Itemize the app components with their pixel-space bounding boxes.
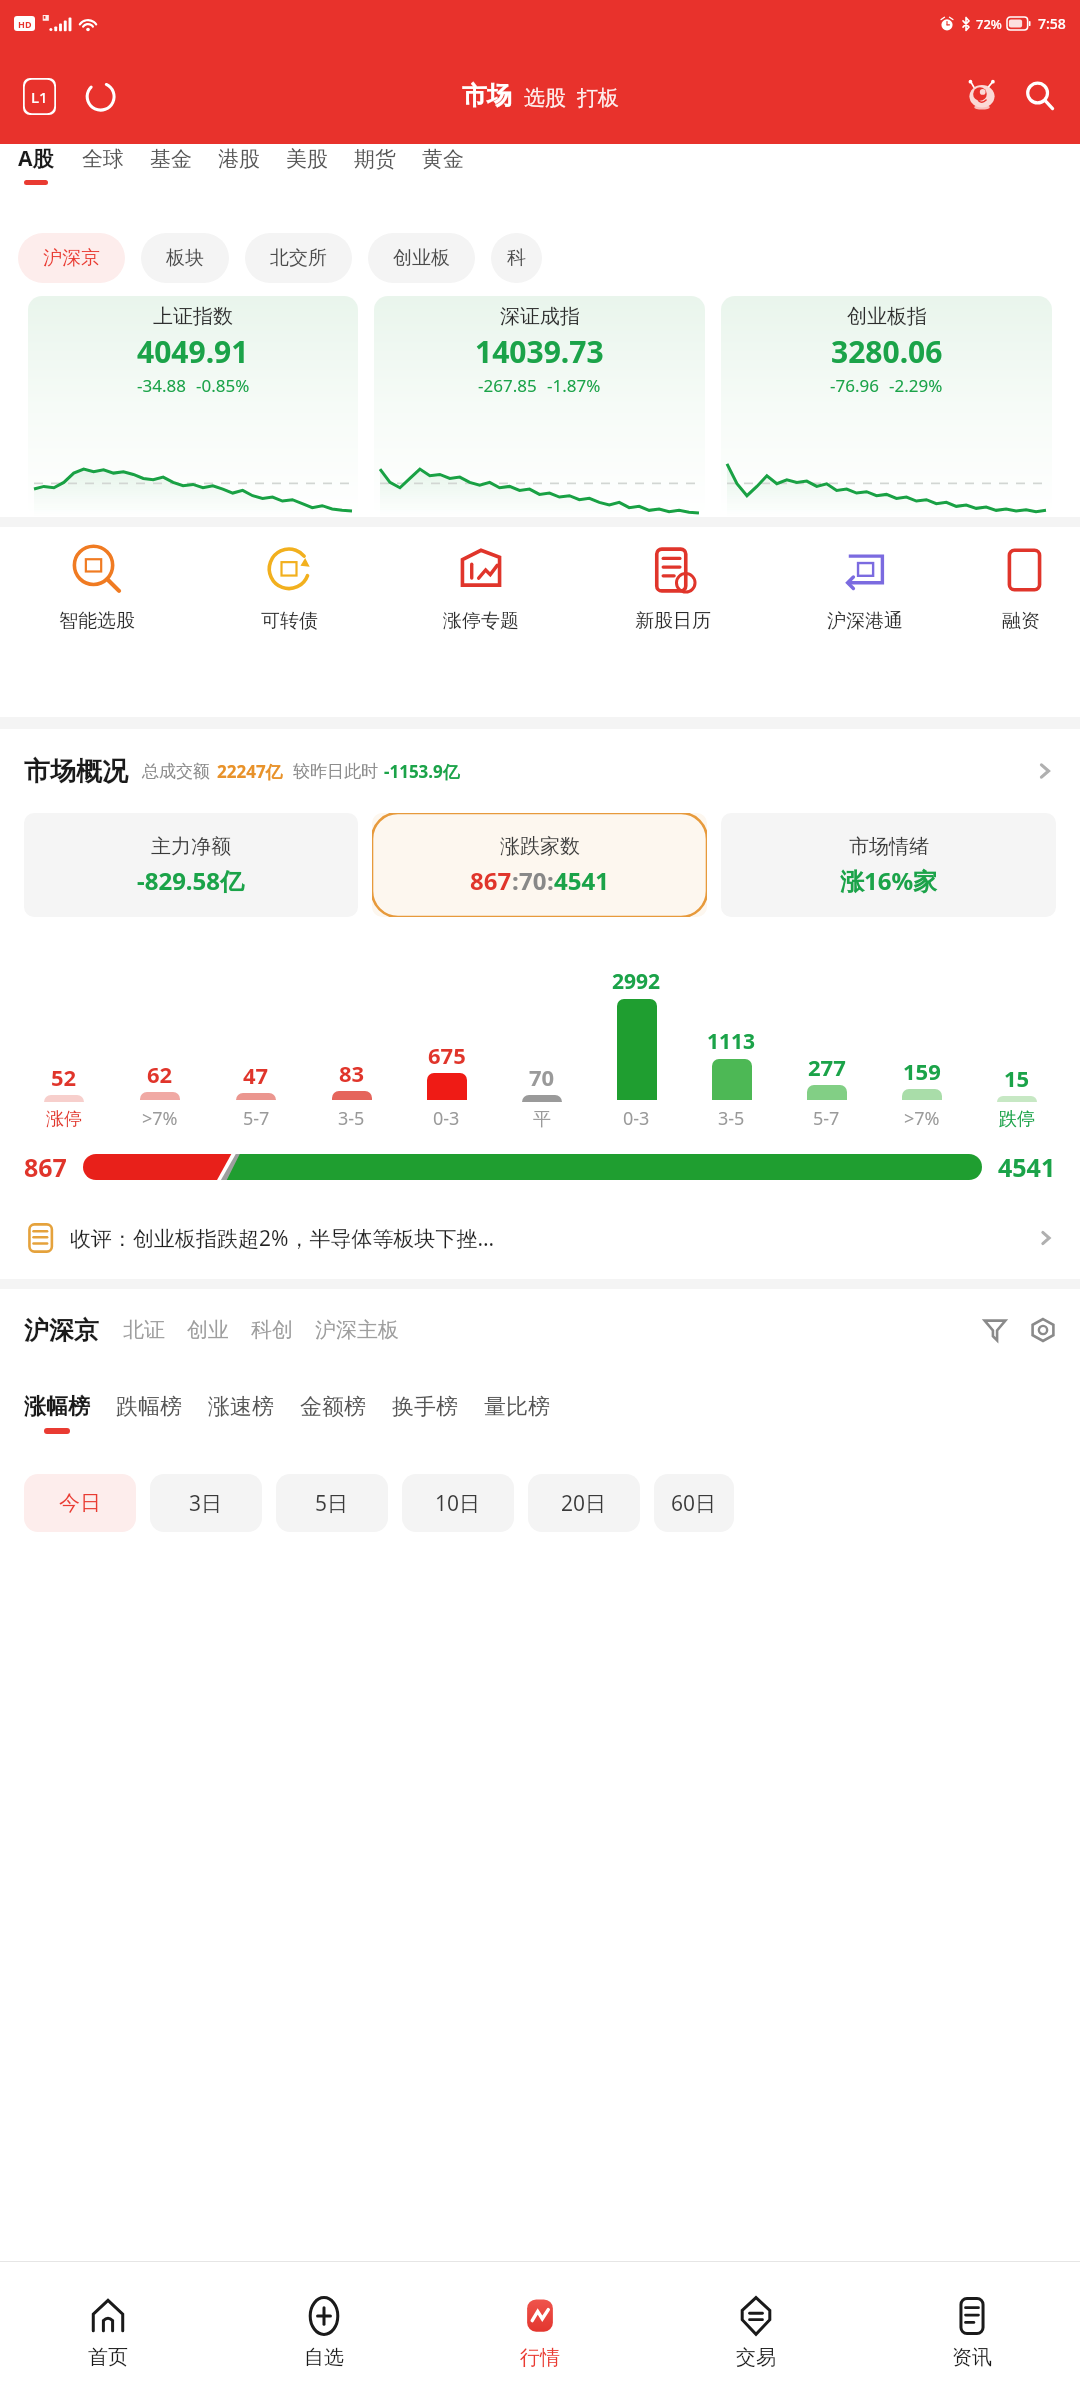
- button[interactable]: 新股日历: [577, 541, 769, 633]
- staticText: 0-3: [623, 1106, 650, 1131]
- staticText: 涨停专题: [443, 609, 519, 633]
- button[interactable]: 自选: [216, 2262, 432, 2400]
- button[interactable]: 市场概况: [24, 729, 1056, 813]
- button[interactable]: 创业板: [368, 233, 475, 283]
- staticText: 打板: [577, 85, 619, 111]
- button[interactable]: 可转债: [193, 541, 385, 633]
- staticText: :: [547, 864, 554, 897]
- button[interactable]: 涨速榜: [208, 1393, 274, 1434]
- button[interactable]: 首页: [0, 2262, 216, 2400]
- staticText: 22247亿: [217, 760, 283, 783]
- button[interactable]: 创业: [187, 1317, 229, 1343]
- staticText: 量比榜: [484, 1393, 550, 1421]
- button[interactable]: 交易: [648, 2262, 864, 2400]
- staticText: 总成交额: [142, 761, 210, 782]
- button[interactable]: 上证指数: [28, 296, 358, 517]
- button[interactable]: 全球: [82, 146, 124, 184]
- staticText: 867: [470, 864, 512, 897]
- staticText: 675: [428, 1040, 466, 1070]
- button[interactable]: 市场情绪: [721, 813, 1056, 917]
- staticText: 北交所: [270, 246, 327, 270]
- button[interactable]: 今日: [24, 1474, 136, 1532]
- button[interactable]: 沪深主板: [315, 1317, 399, 1343]
- button[interactable]: 涨幅榜: [24, 1393, 90, 1434]
- button[interactable]: 科: [491, 233, 542, 283]
- button[interactable]: 板块: [141, 233, 229, 283]
- staticText: >7%: [904, 1106, 940, 1131]
- button[interactable]: Assistant: [960, 74, 1004, 118]
- staticText: 科: [507, 246, 526, 270]
- staticText: 159: [903, 1056, 941, 1086]
- staticText: 交易: [736, 2345, 776, 2370]
- button[interactable]: 5日: [276, 1474, 388, 1532]
- button[interactable]: 3日: [150, 1474, 262, 1532]
- button[interactable]: 主力净额: [24, 813, 358, 917]
- staticText: 20日: [561, 1489, 607, 1518]
- button[interactable]: 沪深京: [18, 233, 125, 283]
- button[interactable]: 科创: [251, 1317, 293, 1343]
- button[interactable]: Settings: [1024, 1311, 1062, 1349]
- button[interactable]: A股: [18, 144, 54, 185]
- staticText: L1: [31, 87, 48, 107]
- button[interactable]: 收评：创业板指跌超2%，半导体等板块下挫…: [24, 1211, 1056, 1265]
- staticText: 867: [24, 1150, 67, 1184]
- staticText: 3-5: [718, 1106, 745, 1131]
- staticText: 板块: [166, 246, 204, 270]
- staticText: 跌停: [999, 1108, 1035, 1131]
- button[interactable]: Night mode: [80, 76, 120, 116]
- staticText: 沪深京: [43, 246, 100, 270]
- staticText: 70: [529, 1062, 555, 1092]
- staticText: -34.88: [137, 374, 186, 397]
- staticText: 上证指数: [153, 304, 233, 329]
- staticText: -829.58亿: [137, 864, 245, 897]
- staticText: 83: [339, 1058, 365, 1088]
- button[interactable]: 20日: [528, 1474, 640, 1532]
- button[interactable]: 金额榜: [300, 1393, 366, 1434]
- button[interactable]: 期货: [354, 146, 396, 184]
- staticText: 市场: [462, 80, 512, 111]
- staticText: 1113: [707, 1027, 756, 1056]
- staticText: 52: [51, 1062, 77, 1092]
- staticText: 深证成指: [500, 304, 580, 329]
- button[interactable]: 基金: [150, 146, 192, 184]
- staticText: 涨跌家数: [500, 834, 580, 859]
- staticText: 较昨日此时: [293, 761, 378, 782]
- staticText: 首页: [88, 2345, 128, 2370]
- button[interactable]: 北证: [123, 1317, 165, 1343]
- button[interactable]: 融资: [961, 541, 1080, 633]
- staticText: 融资: [1002, 609, 1040, 633]
- button[interactable]: 10日: [402, 1474, 514, 1532]
- staticText: 可转债: [261, 609, 318, 633]
- button[interactable]: 跌幅榜: [116, 1393, 182, 1434]
- button[interactable]: Search: [1018, 74, 1062, 118]
- button[interactable]: 资讯: [864, 2262, 1080, 2400]
- staticText: 60日: [671, 1489, 717, 1518]
- button[interactable]: 美股: [286, 146, 328, 184]
- button[interactable]: 涨跌家数: [372, 813, 707, 917]
- button[interactable]: Filter: [976, 1311, 1014, 1349]
- staticText: 平: [533, 1108, 551, 1131]
- button[interactable]: 换手榜: [392, 1393, 458, 1434]
- button[interactable]: 涨停专题: [385, 541, 577, 633]
- button[interactable]: 创业板指: [721, 296, 1052, 517]
- staticText: 3日: [189, 1489, 223, 1518]
- button[interactable]: 深证成指: [374, 296, 705, 517]
- button[interactable]: 沪深港通: [769, 541, 961, 633]
- staticText: 70: [519, 864, 547, 897]
- button[interactable]: 黄金: [422, 146, 464, 184]
- button[interactable]: 行情: [432, 2262, 648, 2400]
- button[interactable]: 智能选股: [0, 541, 193, 633]
- button[interactable]: Level 1: [20, 77, 58, 115]
- staticText: 涨16%家: [840, 864, 938, 897]
- button[interactable]: 60日: [654, 1474, 734, 1532]
- button[interactable]: 量比榜: [484, 1393, 550, 1434]
- staticText: -76.96: [830, 374, 879, 397]
- staticText: -1153.9亿: [384, 760, 460, 783]
- staticText: 7:58: [1038, 14, 1066, 33]
- button[interactable]: 北交所: [245, 233, 352, 283]
- button[interactable]: 港股: [218, 146, 260, 184]
- staticText: 2992: [612, 967, 661, 996]
- button[interactable]: 沪深京: [24, 1315, 99, 1346]
- staticText: 涨速榜: [208, 1393, 274, 1421]
- staticText: -0.85%: [196, 374, 250, 397]
